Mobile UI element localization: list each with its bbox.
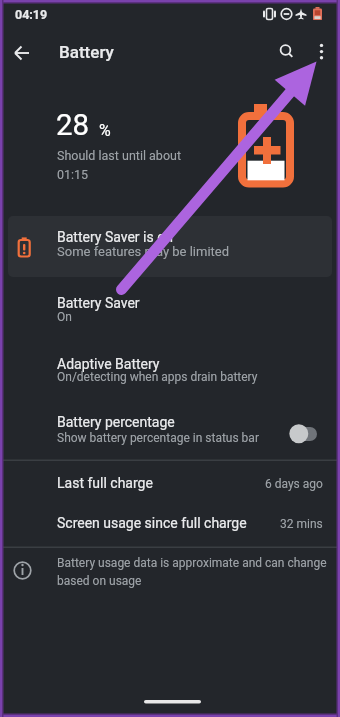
staticText: Some features may be limited xyxy=(57,244,230,259)
staticText: Show battery percentage in status bar xyxy=(57,431,259,445)
staticText: Battery usage data is approximate and ca… xyxy=(57,556,327,588)
staticText: Should last until about 01:15 xyxy=(57,148,181,182)
staticText: 6 days ago xyxy=(265,477,323,491)
button[interactable]: Adaptive Battery xyxy=(0,345,340,400)
staticText: Battery Saver xyxy=(57,295,140,311)
staticText: Battery Saver is on xyxy=(57,229,173,245)
staticText: Battery xyxy=(59,42,114,62)
staticText: Battery percentage xyxy=(57,414,175,430)
button[interactable]: Battery percentage xyxy=(0,402,340,458)
staticText: Adaptive Battery xyxy=(57,356,160,372)
button[interactable] xyxy=(308,38,336,66)
staticText: Screen usage since full charge xyxy=(57,515,247,531)
staticText: % xyxy=(99,121,111,140)
staticText: On xyxy=(57,310,72,324)
staticText: 28 xyxy=(56,108,90,143)
button[interactable]: Battery Saver is on xyxy=(8,216,332,277)
staticText: 32 mins xyxy=(280,517,323,531)
button[interactable]: Battery Saver xyxy=(0,285,340,342)
button[interactable] xyxy=(7,38,37,68)
staticText: Last full charge xyxy=(57,475,153,491)
button[interactable] xyxy=(272,38,300,66)
button[interactable]: Last full charge xyxy=(0,461,340,503)
staticText: On/detecting when apps drain battery xyxy=(57,370,258,384)
button[interactable]: Screen usage since full charge xyxy=(0,503,340,545)
staticText: 04:19 xyxy=(15,7,48,22)
